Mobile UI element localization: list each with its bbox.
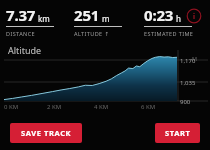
staticText: START bbox=[165, 128, 191, 138]
staticText: SAVE TRACK bbox=[21, 128, 72, 138]
button[interactable]: START bbox=[155, 123, 200, 143]
button[interactable]: Info bbox=[185, 7, 203, 25]
staticText: 900 bbox=[180, 98, 191, 106]
staticText: 0:23 bbox=[144, 5, 174, 25]
button[interactable]: SAVE TRACK bbox=[10, 123, 82, 143]
staticText: 4 KM bbox=[94, 103, 109, 111]
staticText: km bbox=[38, 13, 50, 24]
staticText: 251 bbox=[74, 5, 100, 25]
staticText: h bbox=[176, 13, 181, 24]
staticText: 0 KM bbox=[4, 103, 19, 111]
staticText: 1,035 bbox=[180, 79, 196, 87]
staticText: 6 KM bbox=[141, 103, 156, 111]
staticText: 2 KM bbox=[47, 103, 62, 111]
staticText: m bbox=[102, 13, 110, 24]
staticText: Altitude bbox=[8, 44, 42, 56]
staticText: ALTITUDE ↑ bbox=[74, 30, 110, 37]
staticText: ESTIMATED TIME bbox=[144, 30, 194, 37]
staticText: M bbox=[192, 55, 197, 62]
staticText: 7.37 bbox=[6, 5, 36, 25]
staticText: 1,170 bbox=[180, 57, 196, 65]
staticText: DISTANCE bbox=[6, 30, 36, 37]
